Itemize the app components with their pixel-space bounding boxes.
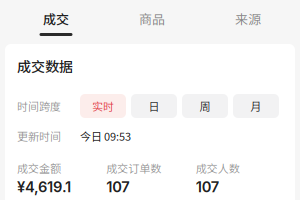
button[interactable]: 月 (233, 94, 279, 118)
staticText: 月 (250, 98, 261, 114)
button[interactable]: 来源 (200, 0, 296, 36)
staticText: 更新时间 (17, 128, 61, 144)
staticText: ¥4,619.1 (17, 178, 71, 196)
staticText: 周 (199, 98, 210, 114)
staticText: 成交数据 (17, 56, 73, 76)
staticText: 今日 09:53 (80, 128, 131, 144)
staticText: 日 (148, 98, 159, 114)
staticText: 商品 (139, 9, 165, 28)
staticText: 来源 (235, 9, 261, 28)
staticText: 107 (106, 178, 129, 196)
staticText: 成交订单数 (106, 160, 161, 176)
button[interactable]: 成交 (8, 0, 104, 36)
staticText: 成交人数 (196, 160, 240, 176)
staticText: 成交 (43, 9, 69, 28)
staticText: 时间跨度 (17, 98, 61, 114)
staticText: 实时 (92, 98, 114, 114)
button[interactable]: 周 (182, 94, 228, 118)
button[interactable]: 商品 (104, 0, 200, 36)
button[interactable]: 实时 (80, 94, 126, 118)
staticText: 成交金额 (17, 160, 61, 176)
staticText: 107 (196, 178, 219, 196)
button[interactable]: 日 (131, 94, 177, 118)
